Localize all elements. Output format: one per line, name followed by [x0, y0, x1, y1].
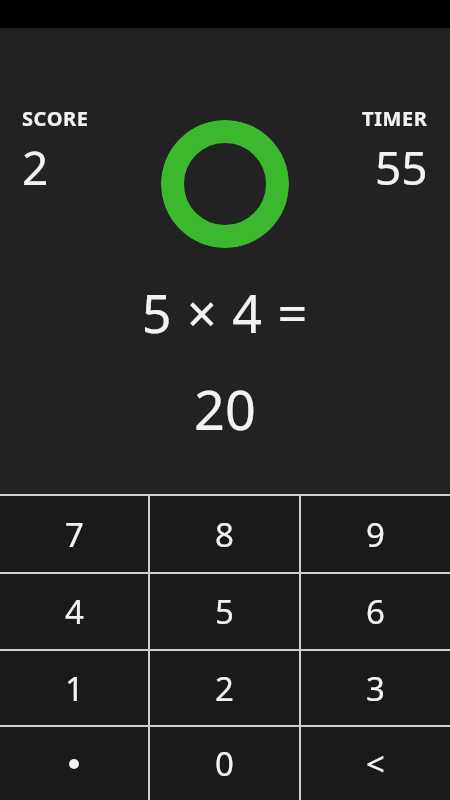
staticText: TIMER — [362, 105, 428, 132]
button[interactable]: Decimal point — [0, 727, 148, 800]
button[interactable]: 0 — [150, 727, 299, 800]
button[interactable]: 8 — [150, 496, 299, 572]
staticText: 6 — [366, 589, 385, 634]
staticText: 1 — [65, 666, 84, 711]
button[interactable]: 1 — [0, 651, 148, 725]
staticText: 0 — [215, 741, 234, 786]
button[interactable]: 3 — [301, 651, 450, 725]
staticText: 8 — [215, 512, 234, 557]
staticText: 5 — [215, 589, 234, 634]
button[interactable]: 7 — [0, 496, 148, 572]
staticText: 4 — [65, 589, 84, 634]
button[interactable]: 9 — [301, 496, 450, 572]
button[interactable]: Backspace — [301, 727, 450, 800]
staticText: 3 — [366, 666, 385, 711]
other: Round timer progress — [161, 120, 289, 248]
staticText: < — [366, 741, 385, 786]
button[interactable]: 2 — [150, 651, 299, 725]
staticText: 7 — [65, 512, 84, 557]
staticText: SCORE — [22, 105, 89, 132]
button[interactable]: 4 — [0, 574, 148, 649]
staticText: 5 × 4 = — [0, 277, 450, 348]
staticText: 55 — [375, 136, 428, 199]
staticText: 2 — [215, 666, 234, 711]
staticText: 2 — [22, 136, 49, 199]
staticText: 9 — [366, 512, 385, 557]
staticText: 20 — [0, 372, 450, 446]
button[interactable]: 6 — [301, 574, 450, 649]
button[interactable]: 5 — [150, 574, 299, 649]
